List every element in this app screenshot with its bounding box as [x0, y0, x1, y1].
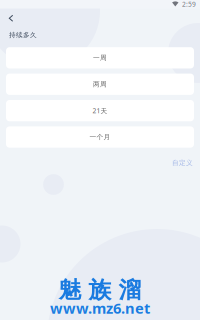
button[interactable]: 21天 [6, 100, 194, 121]
staticText: 一周 [93, 54, 107, 62]
staticText: 持续多久 [9, 31, 37, 39]
staticText: 21天 [92, 106, 107, 115]
staticText: 自定义 [172, 159, 193, 167]
staticText: 一个月 [89, 133, 110, 141]
button[interactable]: 一周 [6, 47, 194, 68]
staticText: www.mz6.net [50, 298, 150, 318]
button[interactable]: 两周 [6, 74, 194, 95]
button[interactable]: Back [0, 11, 22, 25]
staticText: 两周 [93, 80, 107, 88]
staticText: 2:59 [182, 0, 196, 9]
button[interactable]: 自定义 [172, 159, 193, 167]
staticText: 魅 族 溜 [58, 276, 141, 304]
button[interactable]: 一个月 [6, 126, 194, 148]
